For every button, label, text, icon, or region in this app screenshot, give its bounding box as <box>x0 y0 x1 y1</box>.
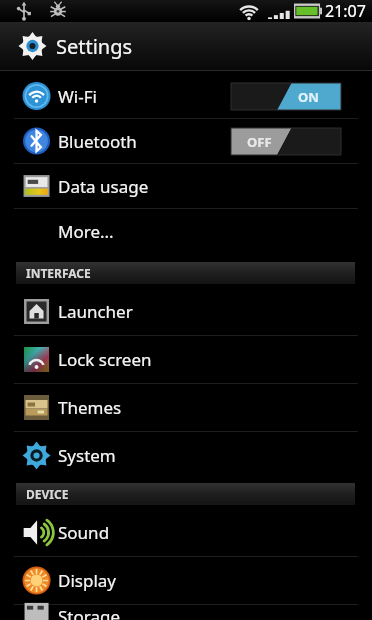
staticText: System <box>58 444 116 467</box>
staticText: Data usage <box>58 175 149 198</box>
button[interactable]: Wi-Fi <box>0 74 372 118</box>
button[interactable]: Bluetooth <box>0 119 372 163</box>
staticText: Display <box>58 569 116 592</box>
button[interactable]: Display <box>0 557 372 604</box>
staticText: DEVICE <box>26 486 69 502</box>
button[interactable]: Settings <box>0 22 372 70</box>
staticText: Wi-Fi <box>58 85 97 108</box>
staticText: ON <box>298 88 319 106</box>
button[interactable]: Themes <box>0 384 372 431</box>
staticText: Storage <box>58 605 121 620</box>
staticText: Themes <box>58 396 122 419</box>
staticText: Bluetooth <box>58 130 137 153</box>
button[interactable]: Launcher <box>0 288 372 335</box>
staticText: More... <box>58 220 114 243</box>
button[interactable]: Sound <box>0 509 372 556</box>
button[interactable]: Storage <box>0 605 372 620</box>
button[interactable]: Lock screen <box>0 336 372 383</box>
button[interactable]: Turn off <box>231 83 341 110</box>
staticText: OFF <box>247 133 272 151</box>
staticText: Lock screen <box>58 348 152 371</box>
staticText: INTERFACE <box>26 265 91 281</box>
button[interactable]: Turn on <box>231 128 341 155</box>
button[interactable]: More... <box>0 209 372 253</box>
button[interactable]: Data usage <box>0 164 372 208</box>
staticText: Sound <box>58 521 110 544</box>
staticText: Settings <box>56 33 133 60</box>
button[interactable]: System <box>0 432 372 479</box>
staticText: 21:07 <box>325 0 366 22</box>
staticText: Launcher <box>58 300 133 323</box>
